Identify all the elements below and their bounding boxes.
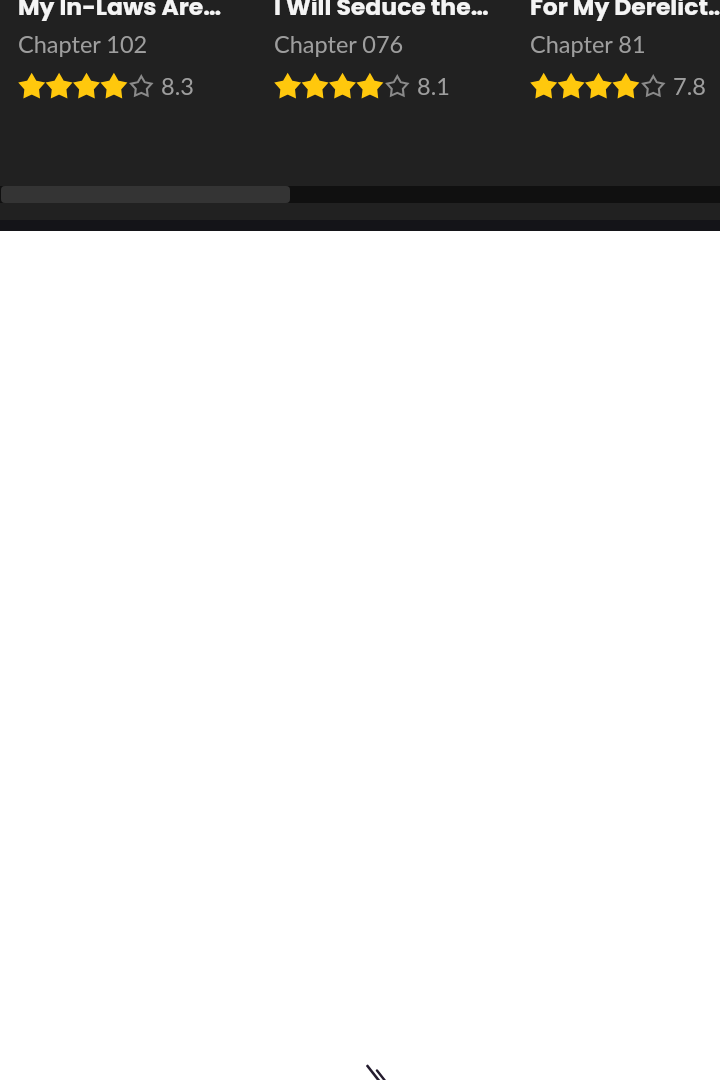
staticText: For My Derelict… <box>530 0 720 23</box>
staticText: Chapter 076 <box>274 30 404 58</box>
staticText: 8.3 <box>161 72 194 100</box>
other: Rating 4 out of 5 stars <box>18 76 155 101</box>
button[interactable] <box>0 186 720 203</box>
staticText: Chapter 81 <box>530 30 646 58</box>
button[interactable]: My In-Laws Are… <box>18 0 238 102</box>
other: Rating 4 out of 5 stars <box>274 76 411 101</box>
staticText: 8.1 <box>417 72 450 100</box>
staticText: I Will Seduce the… <box>274 0 489 23</box>
staticText: 7.8 <box>673 72 706 100</box>
other: Rating 4 out of 5 stars <box>530 76 667 101</box>
button[interactable]: I Will Seduce the… <box>274 0 494 102</box>
staticText: My In-Laws Are… <box>18 0 222 23</box>
staticText: Chapter 102 <box>18 30 148 58</box>
button[interactable]: For My Derelict… <box>530 0 720 102</box>
